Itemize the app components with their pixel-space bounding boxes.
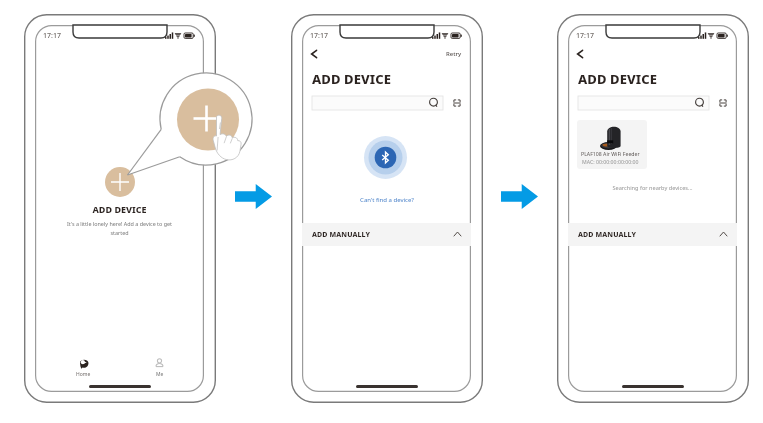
button[interactable]: Home [62, 358, 104, 382]
staticText: ADD MANUALLY [312, 230, 371, 240]
staticText: MAC: 00:00:00:00:00:00 [582, 158, 639, 165]
button[interactable]: Search devices [312, 96, 443, 110]
staticText: 17:17 [43, 31, 61, 41]
staticText: It's a little lonely here! Add a device … [61, 220, 178, 237]
staticText: 17:17 [576, 31, 594, 41]
button[interactable]: Me [138, 358, 180, 382]
staticText: ADD MANUALLY [578, 230, 637, 240]
button[interactable]: ADD MANUALLY [568, 223, 737, 246]
button[interactable]: Back [572, 46, 588, 62]
button[interactable]: Add device [105, 167, 135, 197]
button[interactable]: Bluetooth scanning [364, 136, 407, 179]
button[interactable]: Scan QR code [450, 96, 464, 110]
staticText: ADD DEVICE [35, 203, 204, 215]
staticText: ADD DEVICE [312, 70, 392, 88]
button[interactable]: Can't find a device? [348, 194, 425, 206]
button[interactable]: Scan QR code [716, 96, 730, 110]
staticText: PLAF108 Air WiFi Feeder [581, 150, 640, 157]
staticText: Can't find a device? [360, 196, 414, 204]
staticText: ADD DEVICE [578, 70, 658, 88]
staticText: Searching for nearby devices... [568, 184, 737, 192]
staticText: 17:17 [310, 31, 328, 41]
button[interactable]: Retry [442, 47, 466, 61]
staticText: Retry [446, 50, 462, 58]
button[interactable]: Search devices [578, 96, 709, 110]
button[interactable]: ADD MANUALLY [302, 223, 471, 246]
button[interactable]: Back [306, 46, 322, 62]
button[interactable]: PLAF108 Air WiFi Feeder [577, 120, 647, 169]
staticText: Home [76, 371, 91, 378]
staticText: Me [156, 371, 164, 378]
